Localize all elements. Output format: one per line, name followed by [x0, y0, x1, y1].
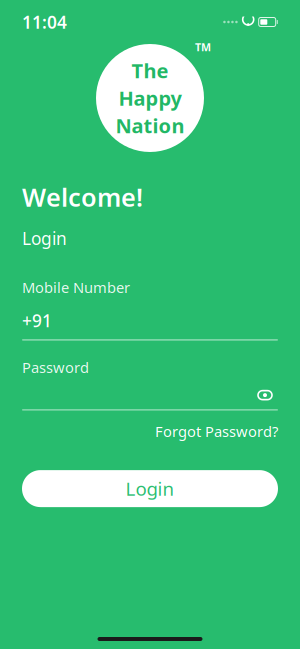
staticText: Login — [125, 476, 174, 501]
staticText: The — [131, 57, 168, 84]
staticText: Welcome! — [22, 180, 143, 214]
staticText: Forgot Password? — [155, 422, 278, 441]
button[interactable]: Forgot Password? — [155, 422, 278, 441]
staticText: Login — [22, 227, 67, 250]
button[interactable]: Show password — [252, 385, 278, 405]
button[interactable]: Login — [22, 470, 278, 507]
staticText: 11:04 — [22, 10, 67, 33]
staticText: Happy — [118, 85, 181, 111]
staticText: Mobile Number — [22, 278, 130, 297]
staticText: Nation — [115, 112, 184, 139]
staticText: TM — [195, 40, 211, 54]
staticText: Password — [22, 358, 89, 377]
staticText: +91 — [22, 309, 52, 332]
